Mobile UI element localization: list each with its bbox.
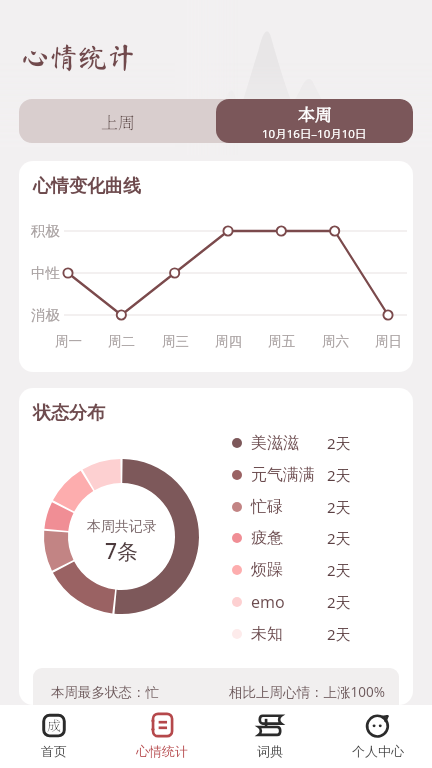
button[interactable]: 未知 xyxy=(232,620,402,648)
staticText: 心情统计 xyxy=(20,42,137,71)
staticText: 本周最多状态：忙 xyxy=(51,684,159,701)
staticText: 个人中心 xyxy=(352,743,404,759)
staticText: 词典 xyxy=(257,743,283,759)
button[interactable]: 个人中心 xyxy=(324,705,432,768)
staticText: 2天 xyxy=(327,592,351,612)
staticText: 成 xyxy=(47,715,61,735)
button[interactable]: emo xyxy=(232,588,402,616)
staticText: 周三 xyxy=(162,333,189,350)
staticText: 中性 xyxy=(31,264,60,282)
staticText: 状态分布 xyxy=(33,402,105,425)
button[interactable]: 忙碌 xyxy=(232,493,402,521)
staticText: 2天 xyxy=(327,433,351,453)
button[interactable]: 美滋滋 xyxy=(232,429,402,457)
staticText: 积极 xyxy=(31,222,60,240)
staticText: 2天 xyxy=(327,624,351,644)
staticText: 忙碌 xyxy=(251,497,283,517)
button[interactable]: 首页 xyxy=(0,705,108,768)
staticText: 2天 xyxy=(327,465,351,485)
staticText: 本周 xyxy=(298,101,332,125)
staticText: 心情统计 xyxy=(136,743,188,759)
button[interactable]: 烦躁 xyxy=(232,556,402,584)
button[interactable]: 疲惫 xyxy=(232,524,402,552)
staticText: 心情变化曲线 xyxy=(33,175,141,198)
staticText: 10月16日–10月10日 xyxy=(262,126,367,142)
staticText: 周日 xyxy=(375,333,402,350)
button[interactable]: 元气满满 xyxy=(232,461,402,489)
staticText: 周六 xyxy=(322,333,349,350)
staticText: 烦躁 xyxy=(251,560,283,580)
staticText: 首页 xyxy=(41,743,67,759)
staticText: 相比上周心情：上涨100% xyxy=(229,683,385,701)
staticText: 上周 xyxy=(101,109,135,133)
button[interactable]: 上周 xyxy=(19,99,216,143)
staticText: 2天 xyxy=(327,497,351,517)
staticText: 2天 xyxy=(327,560,351,580)
staticText: 周五 xyxy=(268,333,295,350)
staticText: 周四 xyxy=(215,333,242,350)
button[interactable]: 词典 xyxy=(216,705,324,768)
staticText: 消极 xyxy=(31,306,60,324)
staticText: 美滋滋 xyxy=(251,433,299,453)
button[interactable]: 心情统计 xyxy=(108,705,216,768)
staticText: 疲惫 xyxy=(251,528,283,548)
staticText: 本周共记录 xyxy=(87,518,157,536)
staticText: 7条 xyxy=(105,537,139,566)
staticText: 周二 xyxy=(108,333,135,350)
staticText: 2天 xyxy=(327,528,351,548)
staticText: 周一 xyxy=(55,333,82,350)
button[interactable]: 本周 xyxy=(216,99,413,143)
staticText: emo xyxy=(251,591,285,613)
staticText: 未知 xyxy=(251,624,283,644)
staticText: 元气满满 xyxy=(251,465,315,485)
